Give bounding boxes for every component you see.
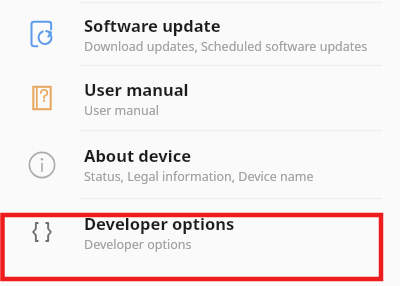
other: Developer options (27, 217, 57, 247)
button[interactable]: About device (0, 131, 400, 198)
button[interactable]: Developer options (0, 199, 400, 265)
staticText: User manual (84, 78, 189, 100)
staticText: Status, Legal information, Device name (84, 168, 314, 185)
staticText: User manual (84, 102, 159, 119)
other: About device (27, 150, 57, 180)
other: Software update (27, 19, 57, 49)
staticText: Software update (84, 14, 221, 36)
staticText: Developer options (84, 212, 235, 234)
other: User manual (28, 84, 56, 112)
button[interactable]: Software update (0, 3, 400, 65)
staticText: About device (84, 144, 192, 166)
staticText: Download updates, Scheduled software upd… (84, 38, 368, 55)
staticText: Developer options (84, 236, 192, 253)
button[interactable]: User manual (0, 66, 400, 130)
